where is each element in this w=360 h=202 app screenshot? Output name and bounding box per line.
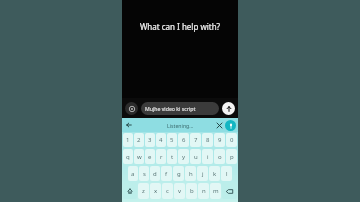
button[interactable]: 8 [202,133,213,147]
button[interactable]: 0 [226,133,237,147]
staticText: o [218,153,222,161]
staticText: t [171,153,174,161]
button[interactable]: Voice input [225,120,236,131]
staticText: j [202,170,204,178]
button[interactable]: c [162,183,173,199]
button[interactable]: 2 [134,133,144,147]
button[interactable]: Camera [125,102,138,115]
button[interactable]: u [190,149,201,164]
button[interactable]: Shift [123,183,137,199]
staticText: p [230,153,234,161]
button[interactable]: v [174,183,185,199]
staticText: k [213,170,217,178]
button[interactable]: Mujhe video ki script [141,102,219,115]
button[interactable]: Back [124,120,134,130]
staticText: 4 [159,136,163,144]
button[interactable]: o [214,149,225,164]
staticText: 9 [218,136,222,144]
staticText: 0 [230,136,234,144]
button[interactable]: p [226,149,237,164]
staticText: x [154,187,158,195]
staticText: c [166,187,169,195]
staticText: m [213,187,219,195]
staticText: h [189,170,193,178]
staticText: 1 [126,136,130,144]
button[interactable]: 9 [214,133,225,147]
staticText: z [142,187,145,195]
button[interactable]: e [145,149,155,164]
button[interactable]: 7 [190,133,201,147]
staticText: e [148,153,152,161]
staticText: l [226,170,228,178]
button[interactable]: k [209,166,220,181]
staticText: 5 [170,136,174,144]
staticText: 2 [137,136,141,144]
staticText: Listening... [167,122,194,129]
button[interactable]: l [221,166,232,181]
staticText: b [190,187,194,195]
staticText: g [177,170,181,178]
button[interactable]: t [167,149,177,164]
button[interactable]: j [197,166,208,181]
button[interactable]: Close [215,121,224,130]
button[interactable]: s [139,166,149,181]
button[interactable]: Send [222,102,235,115]
staticText: y [182,153,186,161]
staticText: v [178,187,182,195]
staticText: a [131,170,135,178]
button[interactable]: 6 [178,133,189,147]
staticText: 7 [194,136,198,144]
button[interactable]: 4 [156,133,166,147]
staticText: s [143,170,146,178]
button[interactable]: 5 [167,133,177,147]
button[interactable]: w [134,149,144,164]
staticText: q [126,153,130,161]
staticText: u [194,153,198,161]
button[interactable]: d [150,166,160,181]
button[interactable]: y [178,149,189,164]
button[interactable]: a [128,166,138,181]
staticText: Mujhe video ki script [145,105,196,112]
button[interactable]: g [173,166,184,181]
button[interactable]: q [123,149,133,164]
staticText: r [160,153,163,161]
button[interactable]: r [156,149,166,164]
button[interactable]: 1 [123,133,133,147]
staticText: 3 [148,136,152,144]
staticText: 6 [182,136,186,144]
staticText: i [207,153,209,161]
button[interactable]: m [210,183,221,199]
button[interactable]: Backspace [222,183,237,199]
button[interactable]: n [198,183,209,199]
button[interactable]: z [138,183,149,199]
staticText: f [165,170,168,178]
button[interactable]: x [150,183,161,199]
button[interactable]: f [161,166,172,181]
staticText: 8 [206,136,210,144]
button[interactable]: 3 [145,133,155,147]
button[interactable]: h [185,166,196,181]
button[interactable]: b [186,183,197,199]
button[interactable]: i [202,149,213,164]
staticText: n [202,187,206,195]
staticText: What can I help with? [122,21,238,32]
staticText: w [137,153,142,161]
staticText: d [153,170,157,178]
